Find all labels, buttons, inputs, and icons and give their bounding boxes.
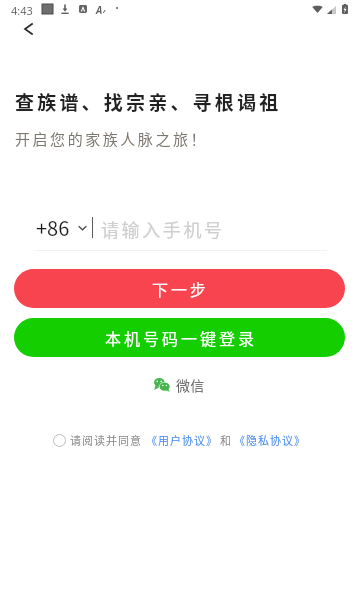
staticText: 4:43 xyxy=(11,3,33,18)
staticText: 《隐私协议》 xyxy=(234,432,306,448)
button[interactable]: 《隐私协议》 xyxy=(234,432,306,448)
staticText: +86 xyxy=(36,213,70,242)
button[interactable]: 微信 xyxy=(154,375,205,395)
staticText: 下一步 xyxy=(152,277,209,300)
staticText: 查族谱、找宗亲、寻根谒祖 xyxy=(15,88,282,116)
button[interactable]: Agree to terms xyxy=(52,433,66,447)
button[interactable]: 下一步 xyxy=(14,269,345,308)
button[interactable]: Back xyxy=(8,8,48,48)
staticText: A xyxy=(96,3,103,17)
staticText: 和 xyxy=(220,432,232,448)
staticText: 本机号码一键登录 xyxy=(105,326,258,349)
button[interactable]: 本机号码一键登录 xyxy=(14,318,345,357)
staticText: 开启您的家族人脉之旅！ xyxy=(15,128,209,150)
staticText: 请阅读并同意 xyxy=(70,432,142,448)
button[interactable]: +86 xyxy=(36,213,84,242)
staticText: 请输入手机号 xyxy=(101,216,225,242)
button[interactable]: 《用户协议》 xyxy=(146,432,218,448)
staticText: 《用户协议》 xyxy=(146,432,218,448)
staticText: 微信 xyxy=(176,375,205,395)
